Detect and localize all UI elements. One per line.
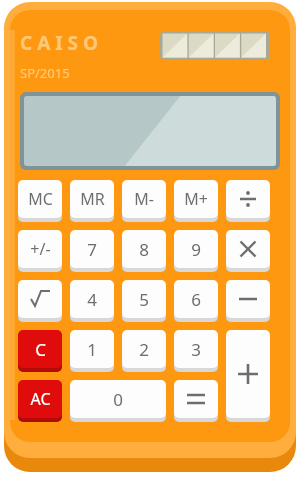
staticText: 5 <box>139 288 149 311</box>
button[interactable]: Divide <box>226 180 270 223</box>
button[interactable]: 2 <box>122 330 166 373</box>
button[interactable]: Equals <box>174 380 218 423</box>
button[interactable]: 1 <box>70 330 114 373</box>
button[interactable]: MC <box>18 180 62 223</box>
staticText: 8 <box>139 238 149 261</box>
button[interactable]: 0 <box>70 380 166 423</box>
staticText: C A I S O <box>20 30 98 56</box>
button[interactable]: 5 <box>122 280 166 323</box>
staticText: SP/2015 <box>20 64 70 82</box>
button[interactable]: 8 <box>122 230 166 273</box>
staticText: 2 <box>139 338 149 361</box>
button[interactable]: 3 <box>174 330 218 373</box>
staticText: 3 <box>191 338 201 361</box>
button[interactable]: 7 <box>70 230 114 273</box>
button[interactable]: 4 <box>70 280 114 323</box>
staticText: +/- <box>30 238 51 260</box>
staticText: M+ <box>184 188 208 210</box>
button[interactable]: +/- <box>18 230 62 273</box>
staticText: 1 <box>87 338 97 361</box>
staticText: AC <box>30 388 51 410</box>
button[interactable]: C <box>18 330 62 373</box>
staticText: 7 <box>87 238 97 261</box>
staticText: MR <box>80 188 105 210</box>
staticText: 9 <box>191 238 201 261</box>
staticText: M- <box>134 188 154 210</box>
button[interactable]: M- <box>122 180 166 223</box>
button[interactable]: 6 <box>174 280 218 323</box>
button[interactable]: Plus <box>226 330 270 423</box>
staticText: 4 <box>87 288 97 311</box>
button[interactable]: AC <box>18 380 62 423</box>
staticText: C <box>35 338 46 361</box>
button[interactable]: Square root <box>18 280 62 323</box>
staticText: MC <box>28 188 53 210</box>
staticText: 6 <box>191 288 201 311</box>
button[interactable]: Multiply <box>226 230 270 273</box>
button[interactable]: MR <box>70 180 114 223</box>
button[interactable]: 9 <box>174 230 218 273</box>
button[interactable]: Minus <box>226 280 270 323</box>
staticText: 0 <box>113 388 123 411</box>
button[interactable]: M+ <box>174 180 218 223</box>
